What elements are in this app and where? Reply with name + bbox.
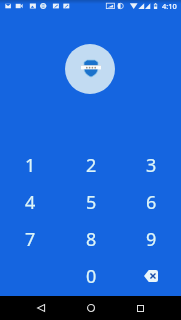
button[interactable]: 4 — [0, 184, 61, 221]
button[interactable]: 3 — [121, 147, 181, 184]
staticText: 3 — [146, 153, 157, 178]
staticText: 9 — [146, 227, 157, 252]
button[interactable]: 6 — [121, 184, 181, 221]
staticText: 7 — [25, 227, 36, 252]
staticText: 4 — [25, 190, 36, 215]
button[interactable]: 2 — [61, 147, 121, 184]
button[interactable]: 5 — [61, 184, 121, 221]
button[interactable]: 8 — [61, 221, 121, 258]
button[interactable]: 0 — [61, 258, 121, 295]
button[interactable]: Back — [29, 296, 53, 320]
staticText: 4:10 — [162, 1, 177, 11]
staticText: 5 — [86, 190, 97, 215]
button[interactable]: App icon — [65, 44, 115, 94]
button[interactable]: Home — [79, 296, 103, 320]
staticText: 1 — [25, 153, 36, 178]
button[interactable]: Recent apps — [128, 296, 152, 320]
button[interactable]: 9 — [121, 221, 181, 258]
button[interactable]: Backspace — [121, 258, 181, 295]
button[interactable]: 7 — [0, 221, 61, 258]
staticText: 0 — [86, 264, 97, 289]
staticText: 2 — [86, 153, 97, 178]
staticText: 8 — [86, 227, 97, 252]
button[interactable]: 1 — [0, 147, 61, 184]
other: Backspace — [144, 270, 158, 282]
staticText: 6 — [146, 190, 157, 215]
